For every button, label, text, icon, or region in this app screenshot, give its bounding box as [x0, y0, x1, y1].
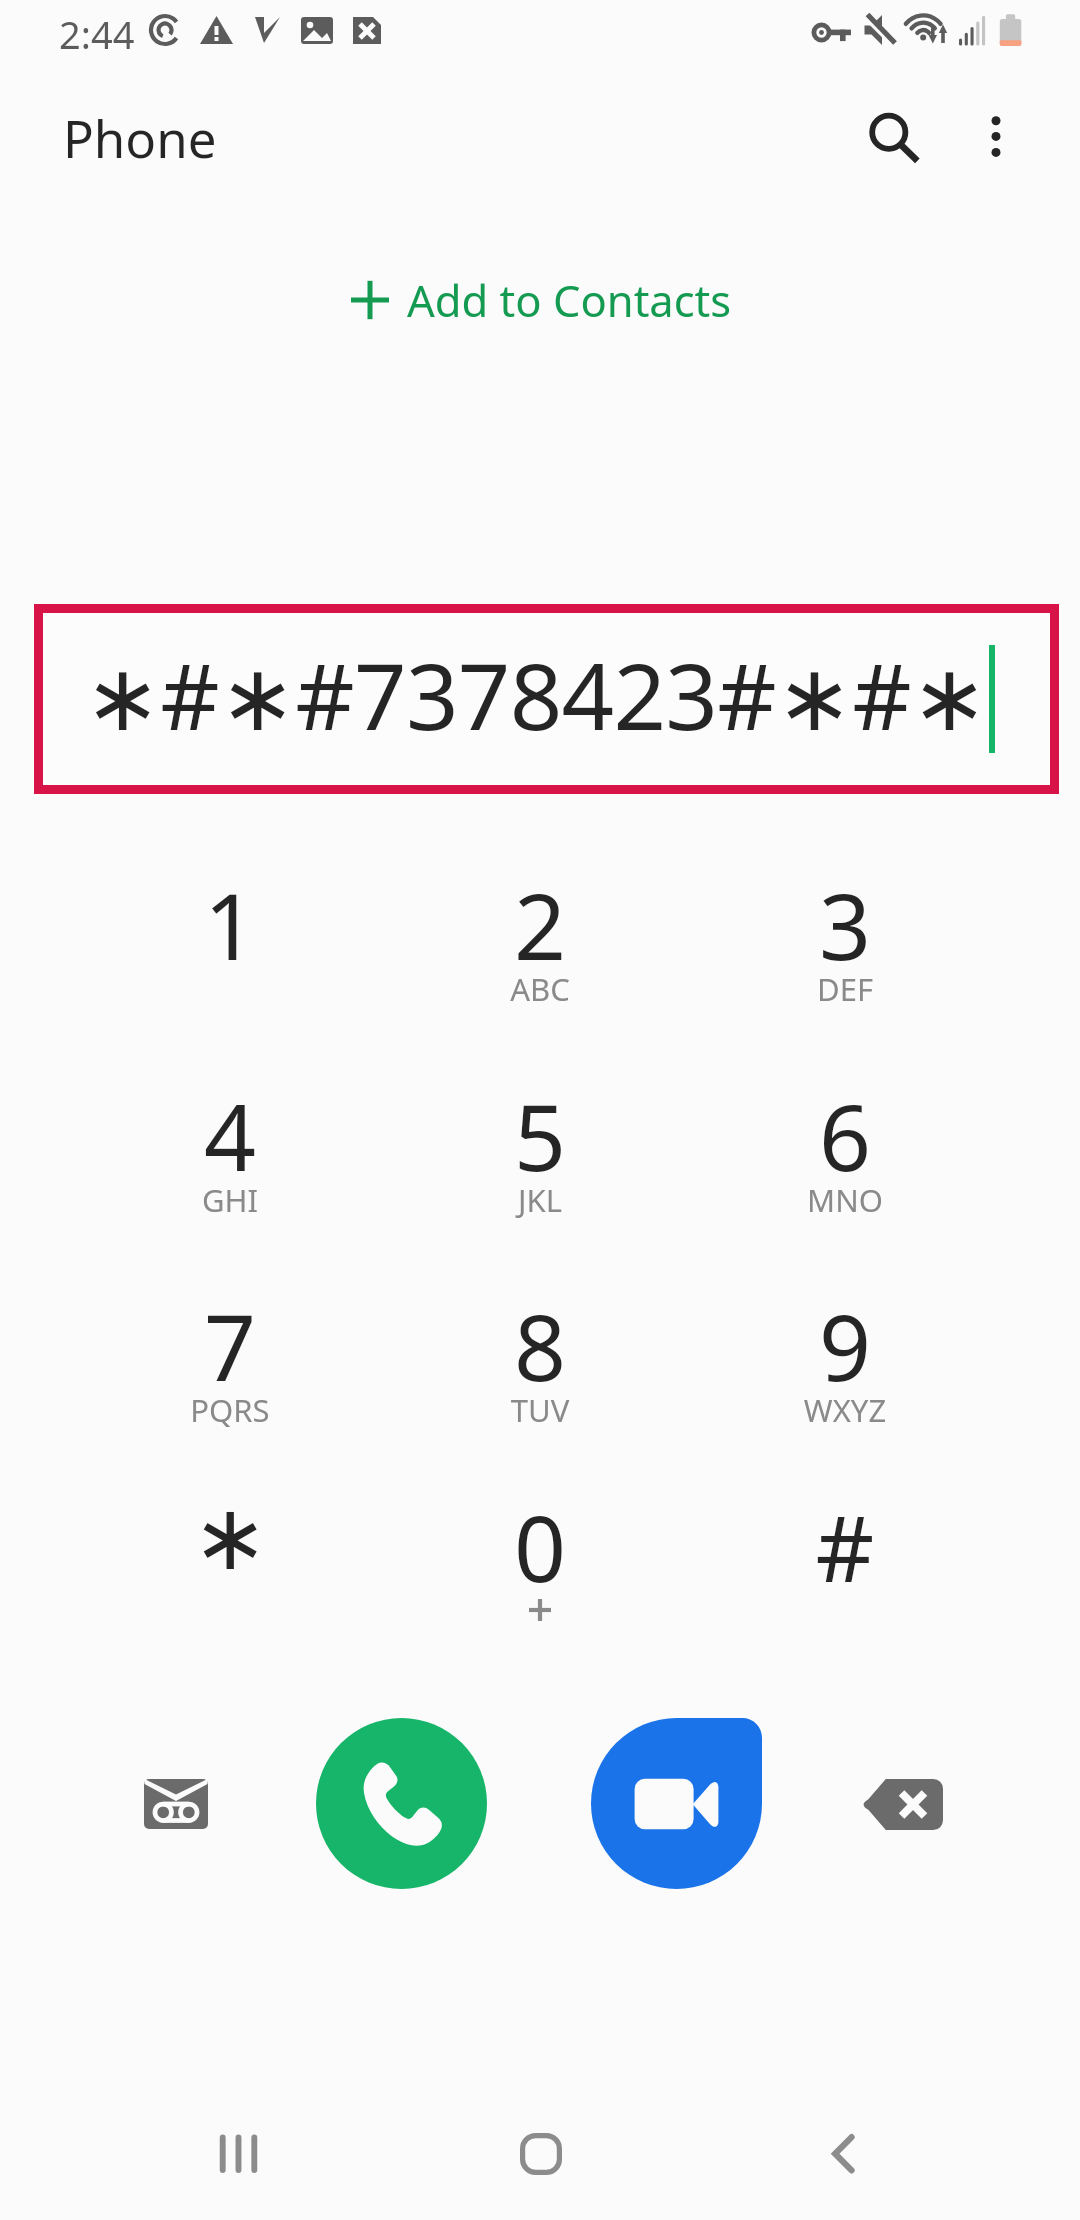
staticText: Add to Contacts — [407, 270, 732, 329]
staticText: JKL — [390, 1179, 690, 1221]
button[interactable]: Call — [316, 1718, 487, 1889]
staticText: WXYZ — [695, 1389, 995, 1431]
staticText: ABC — [390, 968, 690, 1010]
staticText: ∗ — [80, 1485, 380, 1591]
staticText: Phone — [63, 103, 217, 172]
staticText: 3 — [695, 863, 995, 987]
staticText: 6 — [695, 1074, 995, 1198]
staticText: 7 — [80, 1284, 380, 1408]
button[interactable]: Add to Contacts — [333, 262, 748, 337]
button[interactable]: Voicemail — [116, 1744, 236, 1864]
button[interactable]: 2 — [390, 849, 690, 1049]
button[interactable]: 1 — [80, 849, 380, 1049]
staticText: 5 — [390, 1074, 690, 1198]
button[interactable]: Home — [481, 2094, 601, 2214]
button[interactable]: ∗ — [80, 1471, 380, 1671]
button[interactable]: 5 — [390, 1060, 690, 1260]
staticText: 1 — [80, 863, 380, 987]
button[interactable]: 8 — [390, 1270, 690, 1470]
staticText: 8 — [390, 1284, 690, 1408]
staticText: 2:44 — [59, 8, 135, 60]
button[interactable]: 4 — [80, 1060, 380, 1260]
button[interactable]: 0 — [390, 1471, 690, 1671]
button[interactable]: 6 — [695, 1060, 995, 1260]
button[interactable]: 9 — [695, 1270, 995, 1470]
staticText: TUV — [390, 1389, 690, 1431]
staticText: 0 — [390, 1485, 690, 1609]
staticText: PQRS — [80, 1389, 380, 1431]
button[interactable]: Search — [842, 86, 938, 182]
button[interactable]: 7 — [80, 1270, 380, 1470]
button[interactable]: Video call — [591, 1718, 762, 1889]
staticText: 9 — [695, 1284, 995, 1408]
button[interactable]: 3 — [695, 849, 995, 1049]
staticText: 4 — [80, 1074, 380, 1198]
button[interactable]: Recents — [178, 2094, 298, 2214]
staticText: MNO — [695, 1179, 995, 1221]
staticText: GHI — [80, 1179, 380, 1221]
staticText: ∗#∗#7378423#∗#∗ — [84, 632, 988, 757]
button[interactable]: ∗#∗#7378423#∗#∗ — [43, 613, 1050, 785]
button[interactable]: # — [695, 1471, 995, 1671]
button[interactable]: More options — [948, 86, 1044, 182]
staticText: DEF — [695, 968, 995, 1010]
staticText: 2 — [390, 863, 690, 987]
button[interactable]: Back — [783, 2094, 903, 2214]
button[interactable]: Backspace — [843, 1744, 963, 1864]
staticText: # — [695, 1485, 995, 1609]
